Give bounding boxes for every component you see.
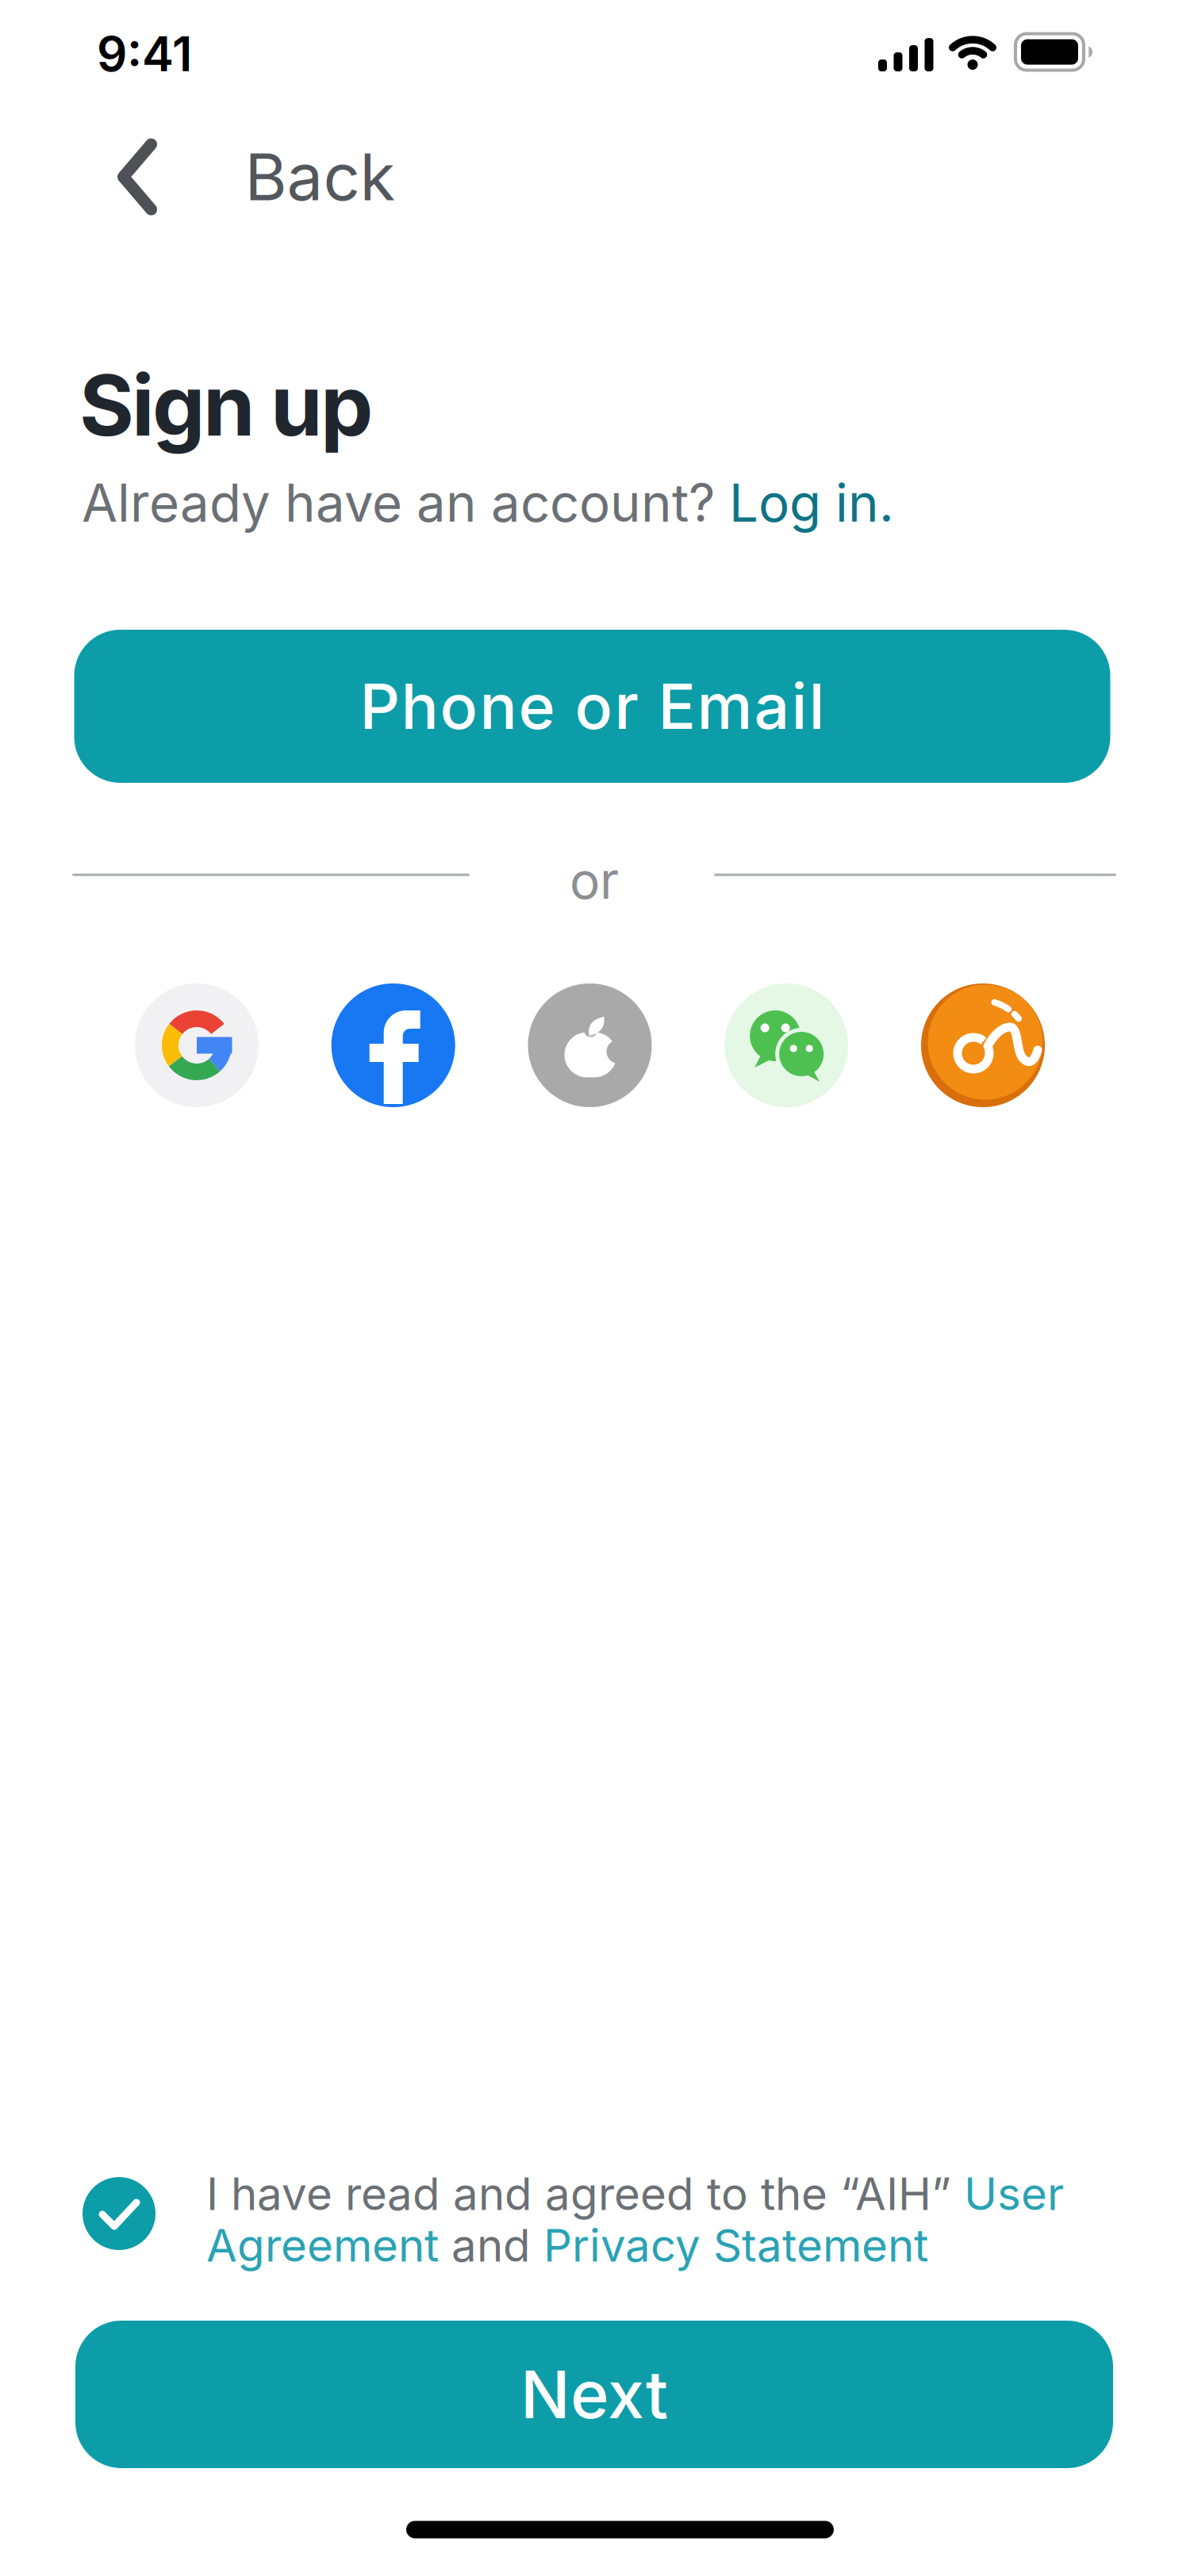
staticText: 9:41 <box>97 25 192 83</box>
staticText: Already have an account? <box>82 471 729 534</box>
button[interactable]: Agree to terms <box>83 2177 155 2250</box>
button[interactable]: Sign up with Alibaba <box>921 983 1045 1107</box>
button[interactable]: Next <box>75 2321 1113 2468</box>
staticText: User <box>964 2167 1064 2221</box>
button[interactable]: Sign up with Facebook <box>331 983 455 1107</box>
button[interactable]: Phone or Email <box>74 630 1110 783</box>
button[interactable]: Sign up with Apple <box>528 983 652 1107</box>
button[interactable]: Back <box>117 138 395 216</box>
button[interactable]: Sign up with Google <box>135 983 259 1107</box>
staticText: and <box>439 2218 543 2272</box>
staticText: Next <box>520 2355 668 2434</box>
staticText: Log in. <box>729 471 894 534</box>
button[interactable]: Sign up with WeChat <box>724 983 848 1107</box>
staticText: Phone or Email <box>360 669 825 744</box>
button[interactable]: Log in. <box>729 471 894 534</box>
staticText: Sign up <box>79 355 373 456</box>
staticText: Back <box>245 138 395 216</box>
button[interactable]: Privacy Statement <box>543 2218 928 2272</box>
staticText: Agreement <box>206 2218 439 2272</box>
staticText: Privacy Statement <box>543 2218 928 2272</box>
staticText: or <box>570 850 619 911</box>
button[interactable]: Agreement <box>206 2218 439 2272</box>
button[interactable]: User <box>964 2167 1064 2221</box>
staticText: I have read and agreed to the “AIH” <box>206 2167 964 2221</box>
